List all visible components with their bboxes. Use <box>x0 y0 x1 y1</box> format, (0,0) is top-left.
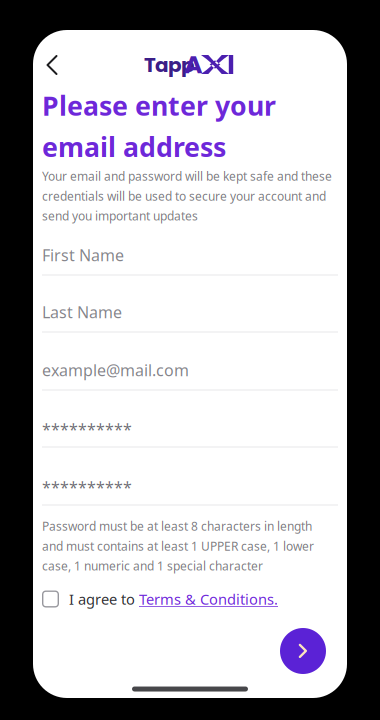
staticText: email address <box>42 129 226 164</box>
button[interactable]: Agree to terms and conditions <box>42 590 59 607</box>
button[interactable]: Terms & Conditions. <box>139 589 278 609</box>
button[interactable]: Next <box>280 628 326 674</box>
button[interactable]: Back <box>32 45 72 85</box>
staticText: Last Name <box>42 301 122 323</box>
staticText: First Name <box>42 244 124 266</box>
staticText: example@mail.com <box>42 359 189 381</box>
staticText: Tapp <box>144 51 195 79</box>
staticText: Terms & Conditions. <box>139 589 278 609</box>
staticText: Please enter your <box>42 88 276 123</box>
staticText: A <box>184 47 203 82</box>
staticText: ********** <box>42 476 132 498</box>
staticText: ********** <box>42 418 132 440</box>
staticText: Your email and password will be kept saf… <box>42 168 332 224</box>
staticText: Password must be at least 8 characters i… <box>42 518 314 574</box>
staticText: I agree to <box>69 589 139 609</box>
